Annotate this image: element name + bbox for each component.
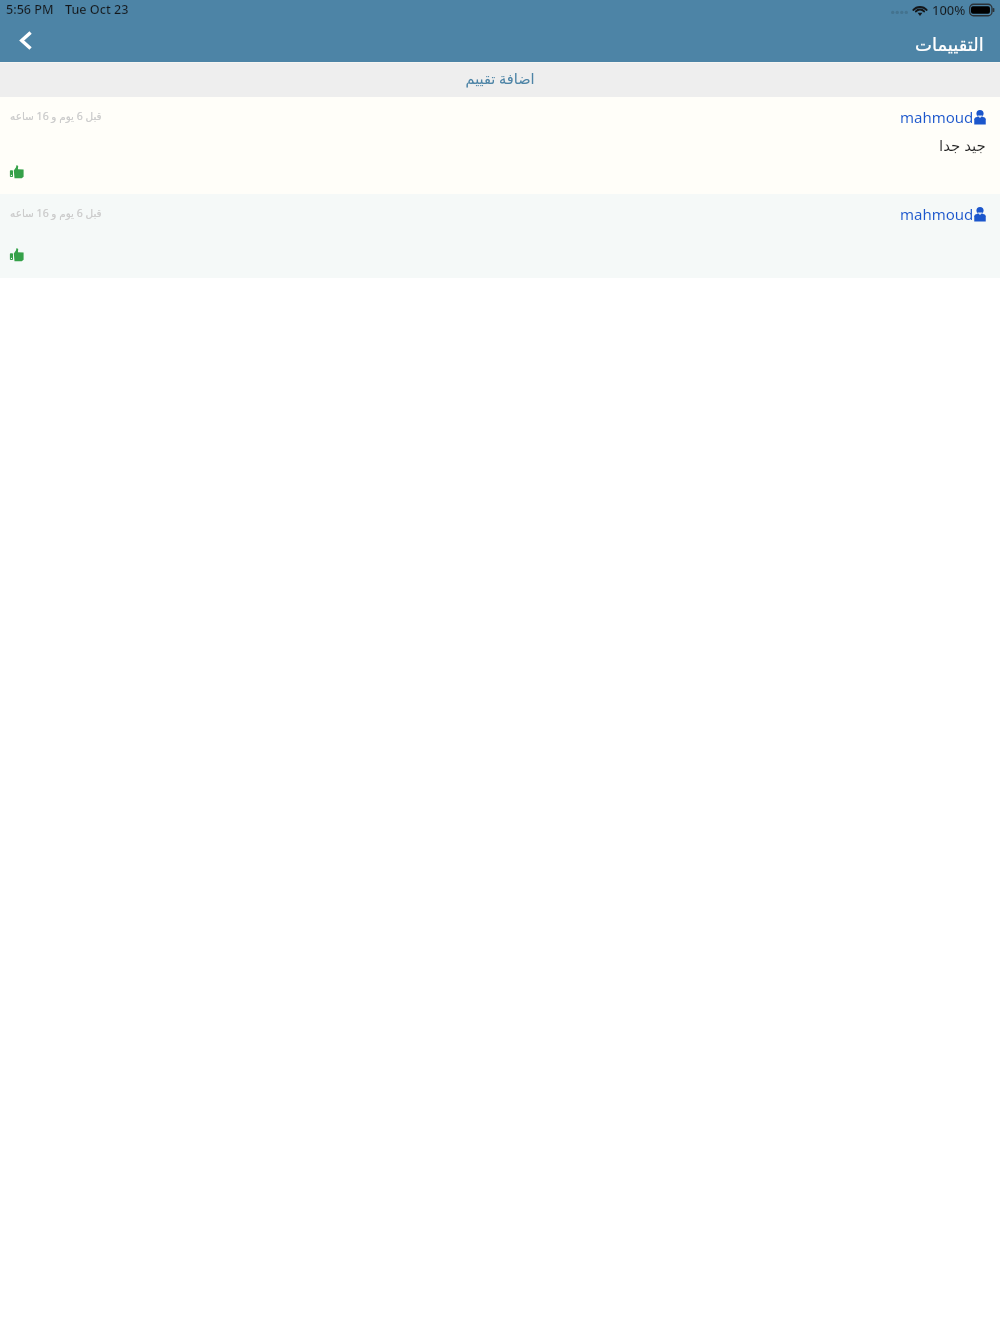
staticText: قبل 6 يوم و 16 ساعه (10, 109, 102, 123)
staticText: mahmoud (900, 204, 974, 224)
staticText: جيد جدا (939, 135, 986, 155)
staticText: قبل 6 يوم و 16 ساعه (10, 206, 102, 220)
button[interactable]: Back (0, 23, 48, 62)
staticText: Tue Oct 23 (65, 1, 129, 18)
staticText: 5:56 PM (6, 1, 54, 18)
button[interactable]: اضافة تقييم (0, 63, 1000, 97)
button[interactable]: Like (9, 164, 24, 179)
staticText: اضافة تقييم (465, 68, 535, 88)
staticText: mahmoud (900, 107, 974, 127)
button[interactable]: قبل 6 يوم و 16 ساعه (0, 194, 1000, 278)
staticText: التقييمات (915, 34, 984, 55)
staticText: 100% (932, 1, 966, 19)
button[interactable]: قبل 6 يوم و 16 ساعه (0, 97, 1000, 194)
button[interactable]: Like (9, 247, 24, 262)
